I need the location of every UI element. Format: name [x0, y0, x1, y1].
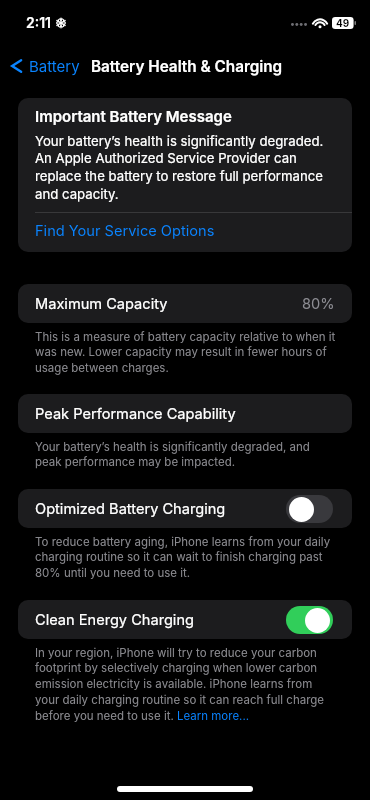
- staticText: Peak Performance Capability: [35, 405, 236, 423]
- staticText: Find Your Service Options: [35, 222, 215, 240]
- staticText: Clean Energy Charging: [35, 611, 194, 629]
- staticText: Battery: [29, 57, 80, 75]
- staticText: 2:11: [26, 14, 52, 31]
- staticText: Your battery’s health is significantly d…: [35, 440, 338, 469]
- staticText: 49: [336, 17, 350, 29]
- button[interactable]: Find Your Service Options: [18, 213, 352, 252]
- staticText: Your battery’s health is significantly d…: [35, 133, 335, 203]
- staticText: Battery Health & Charging: [91, 57, 283, 76]
- staticText: 80%: [302, 295, 335, 313]
- button[interactable]: Switch on: [286, 606, 333, 634]
- button[interactable]: Peak Performance Capability: [18, 394, 352, 433]
- button[interactable]: Optimized Battery Charging: [18, 489, 352, 528]
- button[interactable]: Switch off: [286, 495, 333, 523]
- staticText: In your region, iPhone will try to reduc…: [35, 646, 338, 723]
- button[interactable]: Clean Energy Charging: [18, 600, 352, 639]
- staticText: Optimized Battery Charging: [35, 500, 226, 518]
- staticText: Important Battery Message: [35, 107, 232, 125]
- button[interactable]: Maximum Capacity: [18, 284, 352, 323]
- button[interactable]: Battery: [0, 51, 88, 81]
- staticText: This is a measure of battery capacity re…: [35, 330, 338, 375]
- staticText: Maximum Capacity: [35, 295, 168, 313]
- staticText: To reduce battery aging, iPhone learns f…: [35, 535, 338, 580]
